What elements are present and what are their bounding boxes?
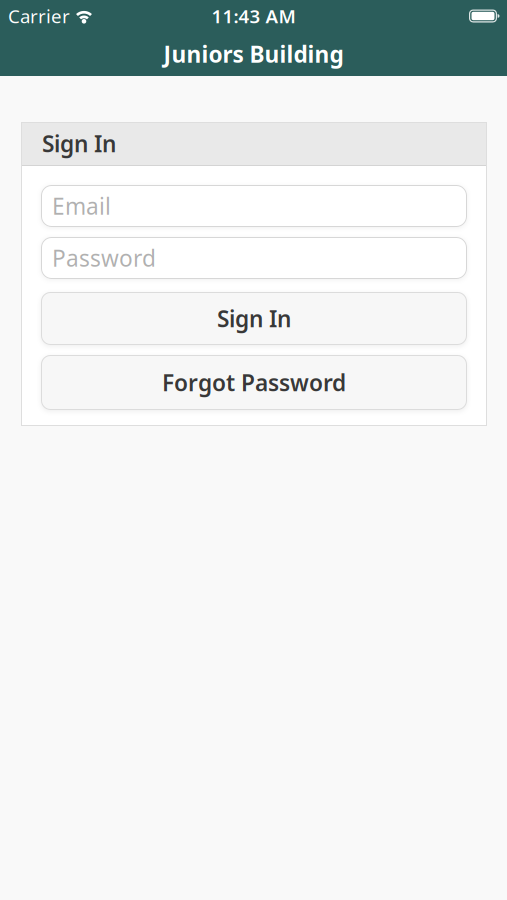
button[interactable]: Email text field: [41, 185, 467, 227]
button[interactable]: Forgot Password: [41, 355, 467, 410]
staticText: 11:43 AM: [211, 4, 295, 28]
staticText: Password: [52, 243, 156, 273]
staticText: Sign In: [217, 303, 291, 333]
button[interactable]: Password text field: [41, 237, 467, 279]
staticText: Sign In: [42, 128, 116, 158]
staticText: Email: [52, 191, 111, 221]
button[interactable]: Sign In: [41, 292, 467, 345]
staticText: Carrier: [8, 4, 70, 28]
staticText: Forgot Password: [162, 367, 346, 397]
staticText: Juniors Building: [163, 39, 343, 69]
